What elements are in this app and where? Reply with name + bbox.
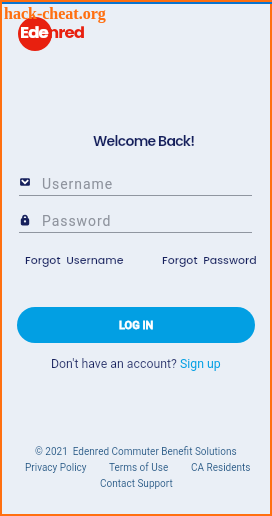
button[interactable]: Terms of Use bbox=[109, 462, 169, 474]
staticText: Username bbox=[42, 176, 114, 192]
button[interactable]: LOG IN bbox=[17, 307, 255, 343]
staticText: Password bbox=[42, 213, 112, 229]
staticText: Welcome Back! bbox=[93, 131, 195, 151]
button[interactable]: Contact Support bbox=[100, 478, 173, 490]
staticText: LOG IN bbox=[119, 319, 154, 332]
staticText: Edenred bbox=[20, 21, 85, 44]
staticText: hack-cheat.org bbox=[4, 5, 106, 23]
button[interactable]: Privacy Policy bbox=[25, 462, 87, 474]
other: Edenred bbox=[18, 17, 90, 51]
staticText: © 2021 Edenred Commuter Benefit Solution… bbox=[35, 446, 237, 458]
button[interactable]: Sign up bbox=[180, 357, 221, 371]
button[interactable]: CA Residents bbox=[191, 462, 251, 474]
button[interactable]: Forgot Username bbox=[25, 252, 124, 267]
staticText: Don't have an account? bbox=[51, 357, 180, 371]
staticText: Edenred bbox=[20, 21, 52, 51]
button[interactable]: Forgot Password bbox=[162, 252, 257, 267]
